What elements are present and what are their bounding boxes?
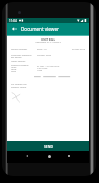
- staticText: Total: [11, 70, 16, 73]
- staticText: Invoice number: [11, 48, 28, 51]
- button[interactable]: Home: [44, 151, 54, 161]
- button[interactable]: Navigate up: [7, 23, 21, 35]
- button[interactable]: SEND: [7, 141, 89, 152]
- staticText: Bill period: [11, 56, 22, 59]
- button[interactable]: Recent apps: [64, 151, 74, 161]
- staticText: Apartment 21-A / block 3: [7, 41, 89, 44]
- button[interactable]: Back: [22, 151, 32, 161]
- staticText: Customer reference: [11, 54, 32, 57]
- staticText: Units: [11, 66, 17, 69]
- staticText: A-22 9100: [37, 67, 48, 70]
- staticText: For queries call: [11, 83, 27, 86]
- staticText: 1348: [37, 69, 43, 72]
- staticText: Meter identity: [11, 60, 26, 63]
- staticText: UNIT BILL: [7, 38, 89, 42]
- staticText: Tariff: [11, 68, 17, 71]
- staticText: 03 May 2019: [7, 48, 85, 51]
- staticText: 5523 / 19: [37, 48, 47, 51]
- staticText: support centre: [11, 86, 27, 89]
- staticText: Previous reading: [11, 64, 29, 67]
- staticText: Document viewer: [21, 26, 59, 32]
- staticText: 01 Mar – 31 Mar 2019: [37, 65, 60, 68]
- staticText: 11:04: [9, 19, 17, 23]
- staticText: CR-8821 0043: [37, 54, 52, 57]
- staticText: SEND: [44, 144, 53, 149]
